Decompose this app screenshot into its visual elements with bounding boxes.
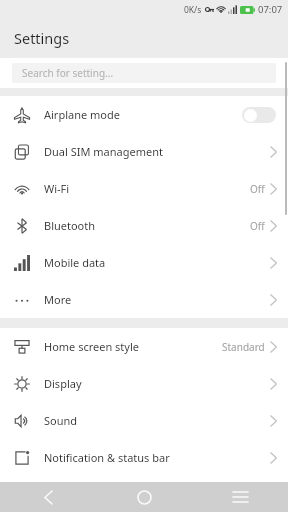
staticText: Search for setting... [22, 66, 114, 80]
button[interactable]: Search for setting... [12, 63, 276, 83]
button[interactable]: Home screen style [0, 328, 288, 365]
button[interactable]: Airplane mode [0, 96, 288, 133]
staticText: Wi-Fi [44, 181, 250, 196]
button[interactable]: Back [0, 482, 96, 512]
staticText: Settings [14, 28, 70, 48]
button[interactable]: Notification & status bar [0, 439, 288, 476]
button[interactable]: Bluetooth [0, 207, 288, 244]
button[interactable]: Airplane mode toggle [242, 107, 276, 123]
button[interactable]: Display [0, 365, 288, 402]
staticText: Home screen style [44, 339, 222, 354]
button[interactable]: Home [96, 482, 192, 512]
staticText: Notification & status bar [44, 450, 270, 465]
button[interactable]: Recent apps [192, 482, 288, 512]
staticText: More [44, 292, 270, 307]
staticText: Apps [44, 487, 270, 502]
staticText: Mobile data [44, 255, 270, 270]
staticText: Airplane mode [44, 107, 242, 122]
staticText: Off [250, 182, 265, 196]
staticText: Sound [44, 413, 270, 428]
staticText: Off [250, 219, 265, 233]
button[interactable]: Sound [0, 402, 288, 439]
staticText: Bluetooth [44, 218, 250, 233]
staticText: 07:07 [258, 3, 283, 16]
staticText: Standard [222, 340, 265, 354]
staticText: Display [44, 376, 270, 391]
button[interactable]: Mobile data [0, 244, 288, 281]
button[interactable]: Dual SIM management [0, 133, 288, 170]
button[interactable]: Apps [0, 476, 288, 512]
button[interactable]: Wi-Fi [0, 170, 288, 207]
staticText: Dual SIM management [44, 144, 270, 159]
staticText: 0K/s [184, 4, 202, 16]
button[interactable]: More [0, 281, 288, 318]
